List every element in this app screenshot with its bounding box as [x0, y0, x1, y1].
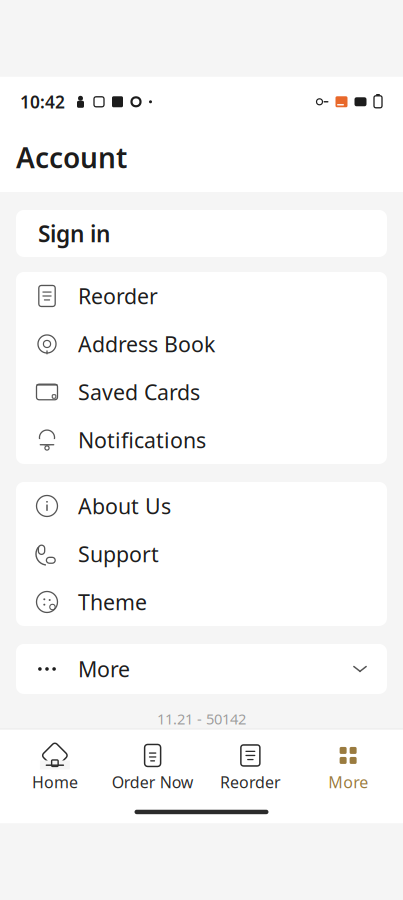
staticText: About Us — [78, 492, 171, 520]
button[interactable]: About Us — [16, 482, 387, 530]
staticText: Notifications — [78, 426, 206, 454]
staticText: Order Now — [112, 771, 194, 793]
staticText: Reorder — [78, 282, 158, 310]
button[interactable]: Home — [6, 735, 104, 801]
staticText: 11.21 - 50142 — [157, 709, 246, 728]
button[interactable]: Theme — [16, 578, 387, 626]
staticText: More — [78, 655, 130, 683]
button[interactable]: Address Book — [16, 320, 387, 368]
staticText: Saved Cards — [78, 378, 200, 406]
staticText: Support — [78, 540, 159, 568]
button[interactable]: Reorder — [201, 735, 299, 801]
staticText: Sign in — [38, 218, 110, 248]
button[interactable]: Order Now — [104, 735, 202, 801]
staticText: Address Book — [78, 330, 215, 358]
button[interactable]: Support — [16, 530, 387, 578]
button[interactable]: More — [16, 644, 387, 694]
button[interactable]: Sign in — [16, 210, 387, 257]
button[interactable]: Reorder — [16, 272, 387, 320]
button[interactable]: Notifications — [16, 416, 387, 464]
staticText: 10:42 — [20, 90, 65, 113]
staticText: Reorder — [220, 771, 281, 793]
button[interactable]: More — [299, 735, 397, 801]
staticText: Home — [32, 771, 78, 793]
button[interactable]: Saved Cards — [16, 368, 387, 416]
staticText: Account — [16, 139, 127, 176]
staticText: More — [328, 771, 368, 793]
staticText: Theme — [78, 588, 147, 616]
